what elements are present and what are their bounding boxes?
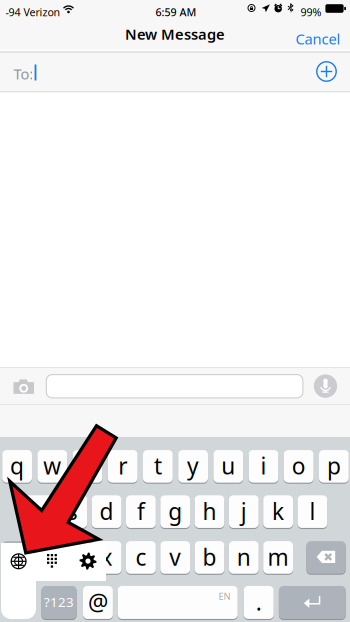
button[interactable]: g bbox=[0, 437, 30, 471]
button[interactable]: Keyboard settings bbox=[1, 543, 38, 581]
staticText: @ bbox=[88, 587, 108, 617]
button[interactable]: z bbox=[0, 437, 30, 471]
button[interactable]: p bbox=[0, 437, 30, 471]
staticText: s bbox=[67, 496, 78, 526]
staticText: 99% bbox=[300, 5, 321, 19]
staticText: e bbox=[81, 451, 94, 481]
button[interactable]: Delete bbox=[0, 437, 39, 471]
staticText: j bbox=[241, 496, 247, 526]
staticText: ?123 bbox=[44, 593, 74, 611]
staticText: r bbox=[118, 451, 127, 481]
staticText: k bbox=[272, 496, 284, 526]
button[interactable]: b bbox=[0, 437, 30, 471]
staticText: h bbox=[202, 496, 216, 526]
button[interactable]: i bbox=[0, 437, 30, 471]
staticText: EN bbox=[219, 590, 231, 602]
button[interactable]: Emoji keyboard bbox=[1, 543, 34, 581]
button[interactable]: y bbox=[0, 437, 30, 471]
staticText: g bbox=[168, 496, 182, 526]
button[interactable]: w bbox=[0, 437, 30, 471]
button[interactable]: h bbox=[0, 437, 30, 471]
staticText: z bbox=[67, 542, 78, 572]
staticText: v bbox=[169, 542, 181, 572]
button[interactable]: . bbox=[0, 437, 30, 471]
staticText: m bbox=[268, 542, 289, 572]
staticText: New Message bbox=[125, 24, 225, 44]
staticText: t bbox=[154, 451, 162, 481]
staticText: -94 Verizon bbox=[5, 5, 60, 19]
staticText: c bbox=[135, 542, 146, 572]
staticText: q bbox=[10, 451, 24, 481]
staticText: n bbox=[237, 542, 251, 572]
button[interactable]: d bbox=[0, 437, 30, 471]
button[interactable]: x bbox=[0, 437, 30, 471]
staticText: . bbox=[256, 587, 262, 617]
button[interactable]: f bbox=[0, 437, 30, 471]
button[interactable]: Cancel bbox=[0, 18, 57, 54]
button[interactable]: r bbox=[0, 437, 30, 471]
button[interactable]: Return bbox=[0, 437, 67, 471]
button[interactable]: u bbox=[0, 437, 30, 471]
staticText: To: bbox=[13, 64, 33, 83]
staticText: x bbox=[101, 542, 113, 572]
button[interactable]: Next keyboard bbox=[1, 543, 36, 581]
button[interactable]: k bbox=[0, 437, 30, 471]
button[interactable]: Camera bbox=[13, 379, 34, 394]
button[interactable]: @ bbox=[0, 437, 30, 471]
button[interactable]: a bbox=[0, 437, 30, 471]
button[interactable]: c bbox=[0, 437, 30, 471]
staticText: f bbox=[137, 496, 145, 526]
button[interactable]: j bbox=[0, 437, 30, 471]
staticText: y bbox=[187, 451, 199, 481]
button[interactable]: o bbox=[0, 437, 30, 471]
staticText: b bbox=[202, 542, 216, 572]
staticText: o bbox=[292, 451, 306, 481]
button[interactable]: n bbox=[0, 437, 30, 471]
button[interactable]: e bbox=[0, 437, 30, 471]
staticText: d bbox=[100, 496, 114, 526]
button[interactable]: l bbox=[0, 437, 30, 471]
staticText: l bbox=[309, 496, 315, 526]
button[interactable]: Numbers bbox=[0, 437, 35, 471]
button[interactable]: Space bbox=[0, 437, 120, 471]
button[interactable]: v bbox=[0, 437, 30, 471]
button[interactable]: m bbox=[0, 437, 30, 471]
staticText: p bbox=[327, 451, 341, 481]
button[interactable]: Add contact bbox=[316, 61, 337, 82]
button[interactable]: Dictate bbox=[314, 374, 337, 398]
button[interactable]: Shift bbox=[0, 437, 39, 471]
staticText: i bbox=[260, 451, 266, 481]
button[interactable]: q bbox=[0, 437, 30, 471]
button[interactable]: Message field bbox=[46, 375, 303, 398]
staticText: 6:59 AM bbox=[155, 5, 196, 19]
staticText: a bbox=[31, 496, 44, 526]
staticText: u bbox=[221, 451, 235, 481]
staticText: Cancel bbox=[295, 29, 340, 48]
button[interactable]: t bbox=[0, 437, 30, 471]
button[interactable]: s bbox=[0, 437, 30, 471]
staticText: w bbox=[43, 451, 61, 481]
